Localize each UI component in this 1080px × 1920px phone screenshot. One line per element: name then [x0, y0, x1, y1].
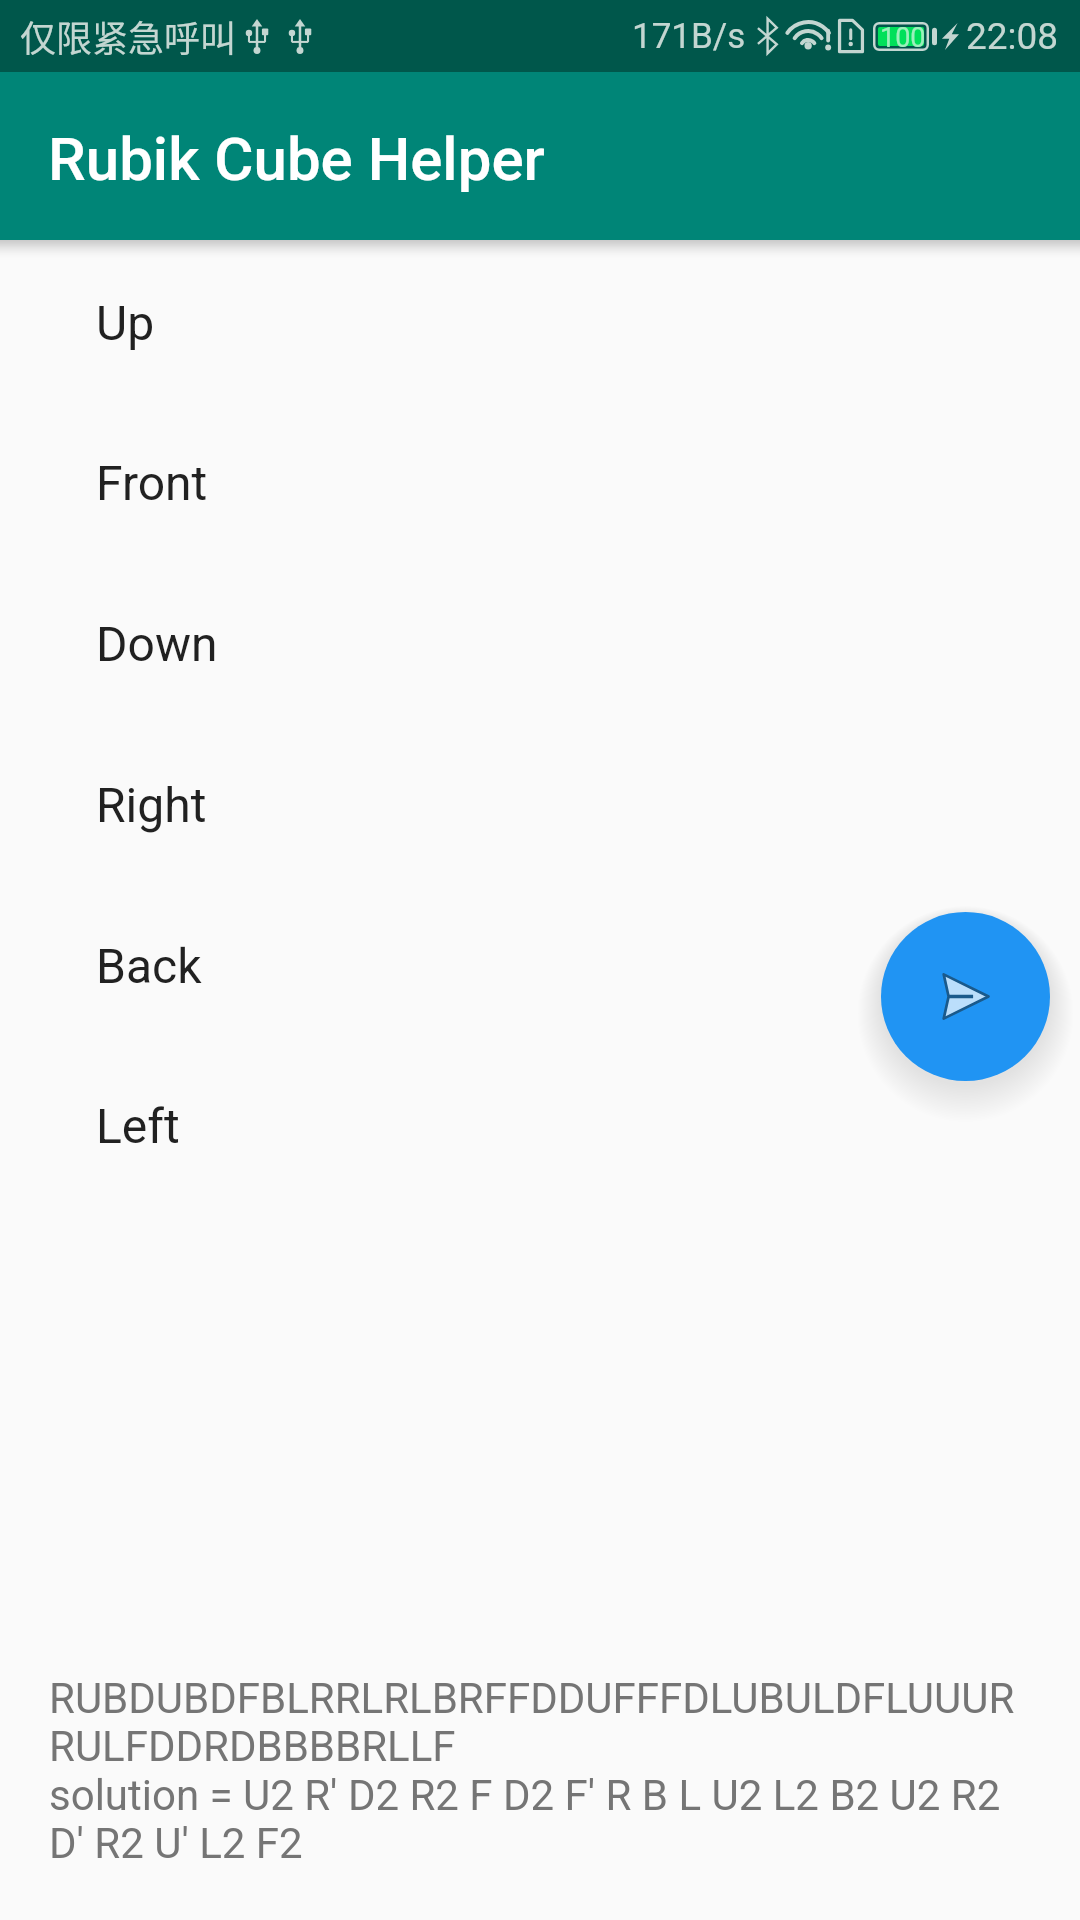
button[interactable]: Back [0, 885, 1080, 1046]
button[interactable]: Left [0, 1045, 1080, 1206]
staticText: Rubik Cube Helper [48, 124, 545, 194]
staticText: 171B/s [632, 16, 746, 57]
staticText: 仅限紧急呼叫 [20, 10, 237, 62]
staticText: Left [96, 1098, 180, 1154]
staticText: Front [96, 455, 208, 511]
staticText: Down [96, 616, 218, 672]
staticText: RUBDUBDFBLRRLRLBRFFDDUFFFDLUBULDFLUUURRU… [49, 1674, 1025, 1771]
staticText: solution = U2 R' D2 R2 F D2 F' R B L U2 … [49, 1771, 1025, 1868]
button[interactable]: Front [0, 402, 1080, 563]
button[interactable]: Send [881, 912, 1050, 1081]
staticText: 22:08 [966, 15, 1059, 58]
staticText: Up [96, 295, 155, 351]
button[interactable]: Down [0, 563, 1080, 724]
staticText: Right [96, 777, 207, 833]
staticText: 100 [880, 22, 926, 51]
button[interactable]: Right [0, 724, 1080, 885]
staticText: Back [96, 938, 202, 994]
button[interactable]: Up [0, 242, 1080, 403]
